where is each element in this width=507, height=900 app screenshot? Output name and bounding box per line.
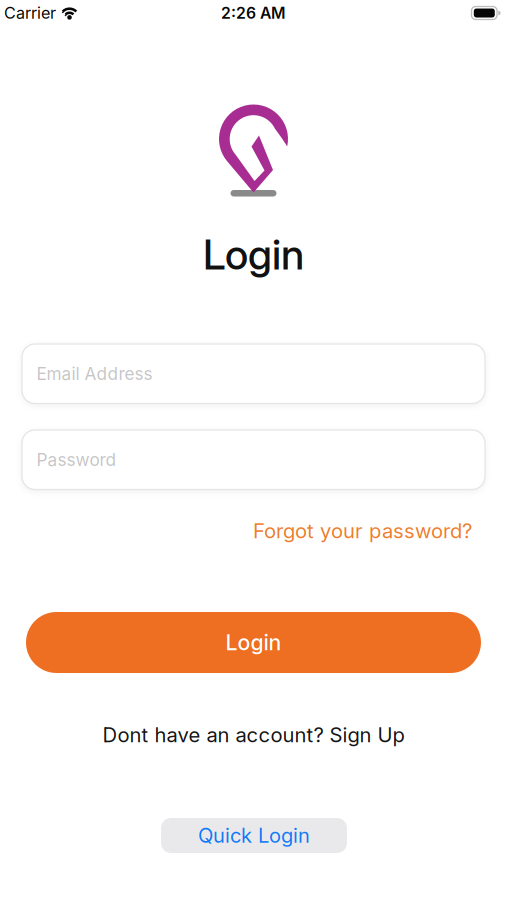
button[interactable]: Login	[26, 612, 481, 673]
staticText: Dont have an account? Sign Up	[102, 723, 404, 747]
staticText: 2:26 AM	[221, 3, 286, 22]
staticText: Login	[203, 229, 304, 279]
button[interactable]: Quick Login	[161, 818, 347, 853]
staticText: Forgot your password?	[253, 519, 472, 543]
staticText: Carrier	[4, 3, 56, 23]
textField[interactable]	[36, 449, 485, 470]
staticText: Quick Login	[198, 823, 310, 848]
staticText	[36, 449, 41, 470]
button[interactable]: Dont have an account? Sign Up	[102, 720, 404, 750]
staticText: Login	[225, 630, 281, 655]
button[interactable]: Forgot your password?	[253, 519, 472, 543]
staticText	[36, 363, 41, 384]
staticText: Password	[36, 449, 116, 470]
staticText: Email Address	[36, 363, 152, 384]
textField[interactable]	[36, 363, 485, 384]
